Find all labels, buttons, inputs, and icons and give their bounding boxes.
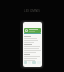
staticText: LEX OMNIS	[24, 9, 40, 13]
button[interactable]: Action 3	[32, 61, 36, 64]
button[interactable]: Action 1	[24, 61, 27, 64]
button[interactable]	[24, 28, 41, 33]
